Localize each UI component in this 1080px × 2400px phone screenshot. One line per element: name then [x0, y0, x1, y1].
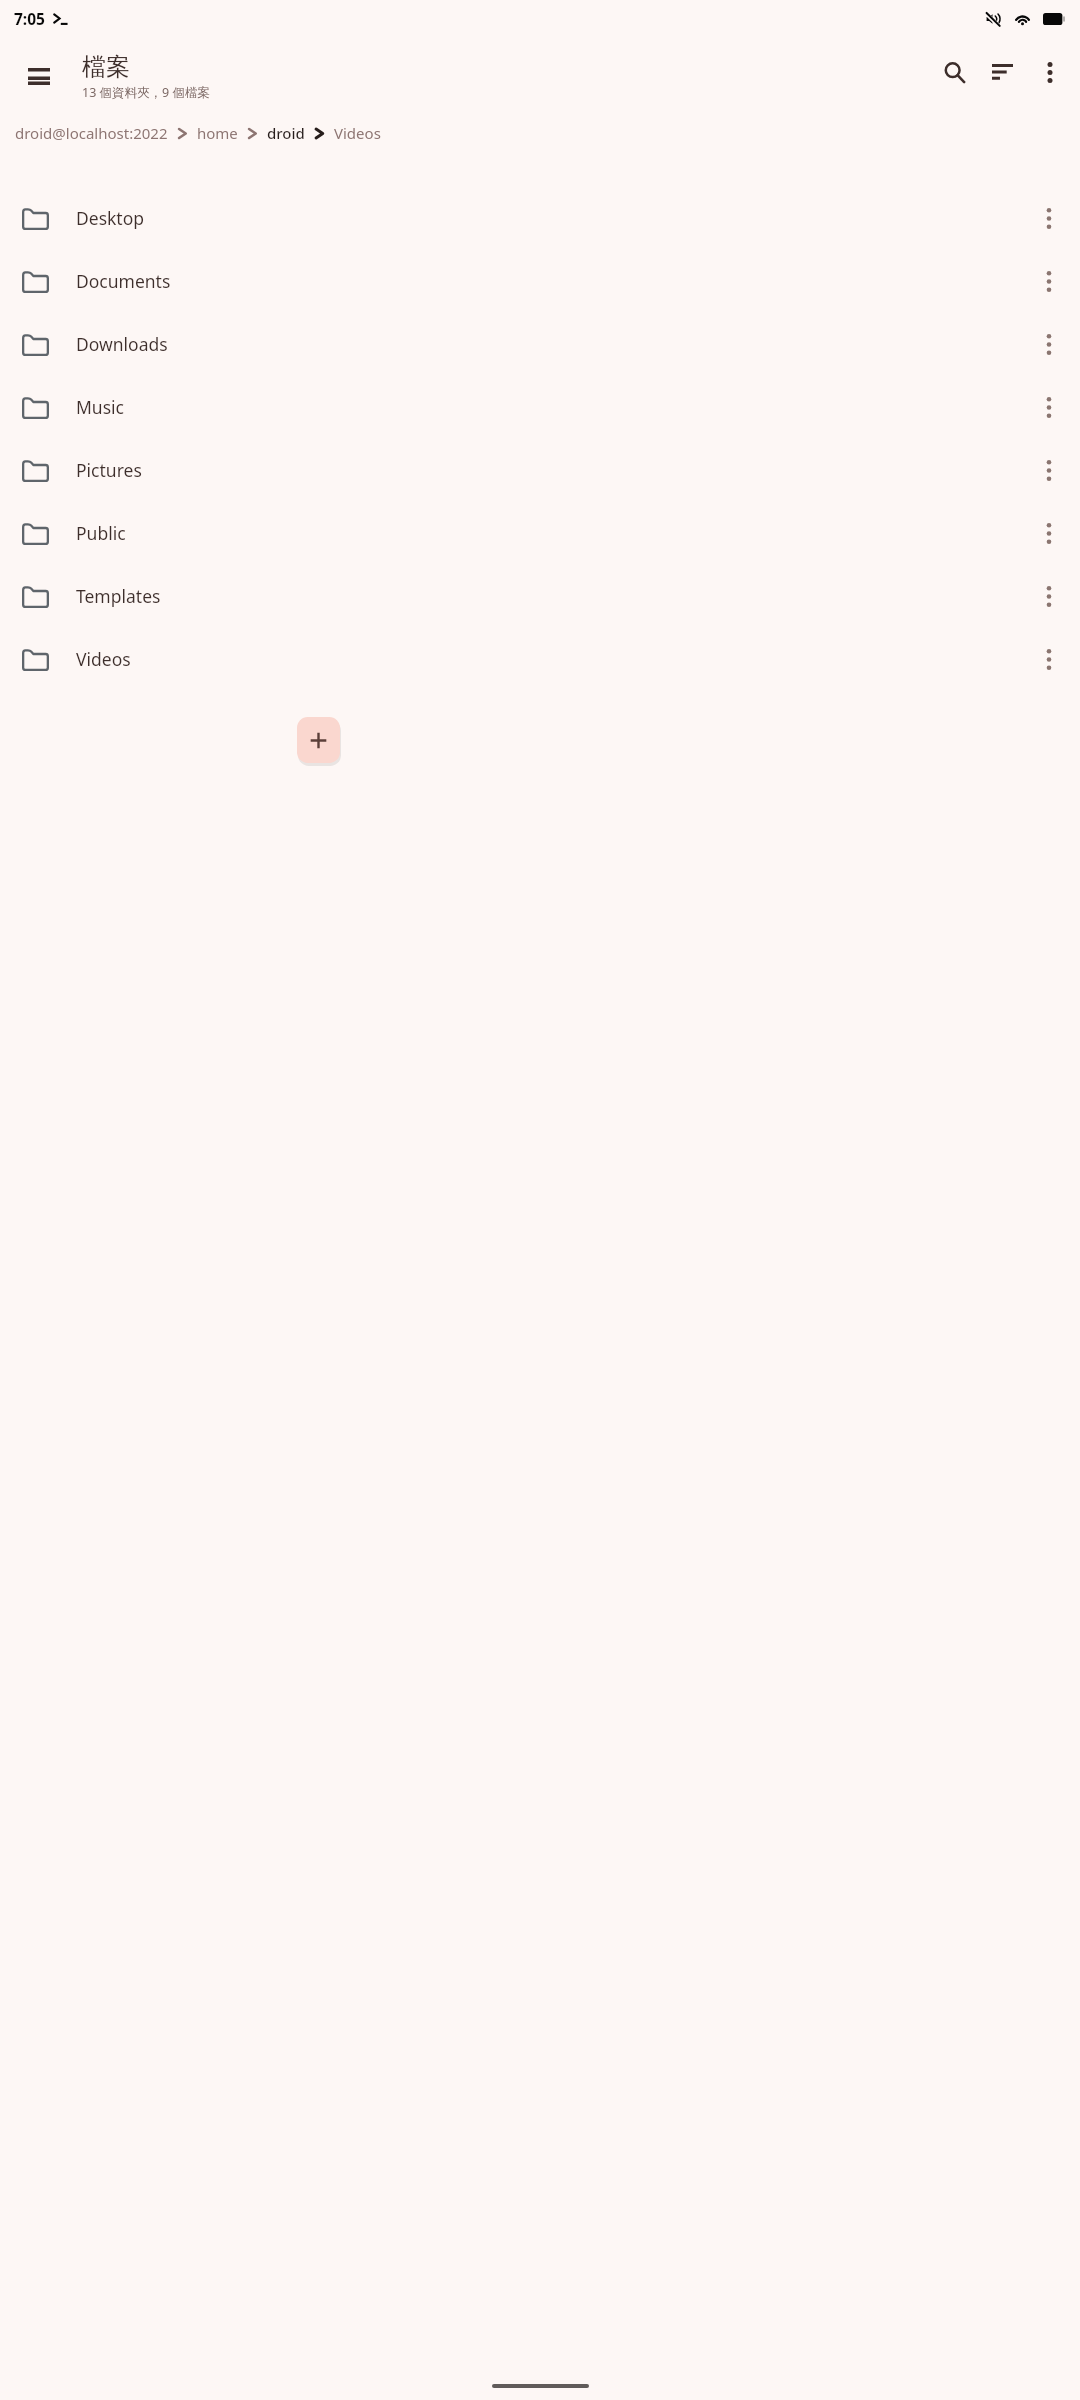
button[interactable]: More options for Documents [1026, 258, 1072, 304]
button[interactable]: Downloads [0, 312, 1080, 375]
staticText: Pictures [76, 458, 1026, 482]
button[interactable]: Videos [0, 627, 1080, 690]
button[interactable]: home [196, 119, 239, 147]
button[interactable]: Videos [333, 119, 382, 147]
button[interactable]: droid [266, 119, 306, 147]
button[interactable]: Create new item [297, 717, 340, 763]
button[interactable]: More options for Music [1026, 384, 1072, 430]
staticText: 13 個資料夾，9 個檔案 [82, 84, 210, 101]
button[interactable]: Templates [0, 564, 1080, 627]
staticText: home [197, 123, 238, 143]
staticText: Downloads [76, 332, 1026, 356]
staticText: Music [76, 395, 1026, 419]
button[interactable]: Search [930, 48, 978, 96]
button[interactable]: Music [0, 375, 1080, 438]
staticText: 檔案 [82, 52, 130, 82]
button[interactable]: More options [1026, 48, 1074, 96]
button[interactable]: More options for Templates [1026, 573, 1072, 619]
staticText: Videos [334, 123, 381, 143]
button[interactable]: More options for Pictures [1026, 447, 1072, 493]
staticText: Documents [76, 269, 1026, 293]
staticText: Videos [76, 647, 1026, 671]
button[interactable]: droid@localhost:2022 [14, 119, 169, 147]
button[interactable]: Desktop [0, 186, 1080, 249]
button[interactable]: Open navigation menu [15, 52, 63, 100]
staticText: droid@localhost:2022 [15, 123, 168, 143]
button[interactable]: Documents [0, 249, 1080, 312]
button[interactable]: Pictures [0, 438, 1080, 501]
staticText: 7:05 [14, 8, 45, 29]
button[interactable]: More options for Public [1026, 510, 1072, 556]
staticText: Templates [76, 584, 1026, 608]
staticText: droid [267, 123, 305, 143]
staticText: Public [76, 521, 1026, 545]
button[interactable]: Sort [978, 48, 1026, 96]
button[interactable]: More options for Downloads [1026, 321, 1072, 367]
button[interactable]: Public [0, 501, 1080, 564]
staticText: Desktop [76, 206, 1026, 230]
button[interactable]: More options for Desktop [1026, 195, 1072, 241]
button[interactable]: More options for Videos [1026, 636, 1072, 682]
